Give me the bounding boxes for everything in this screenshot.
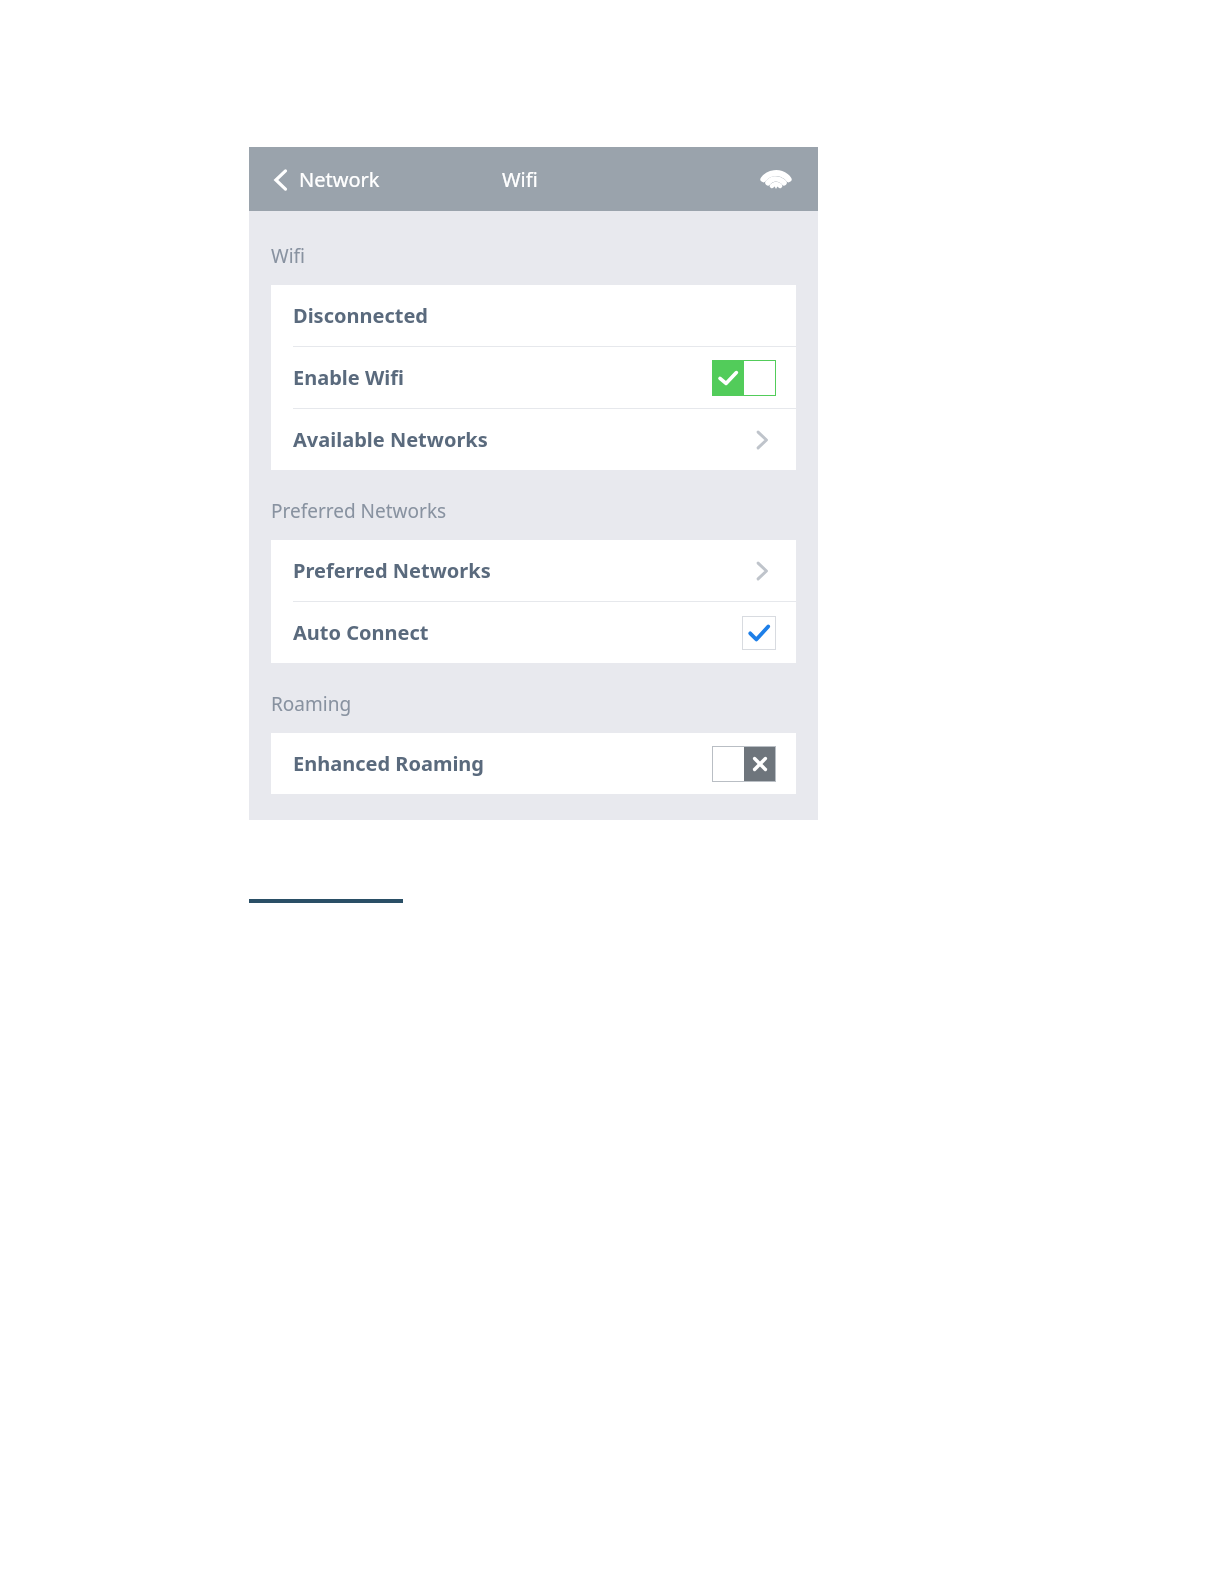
staticText: Roaming [271,691,352,717]
button[interactable]: Available Networks [271,409,796,470]
other: Enable Wifi on [712,360,776,396]
button[interactable]: Wifi status [756,159,796,199]
other: Open [748,557,776,585]
staticText: Wifi [502,166,538,193]
button[interactable]: Network [267,160,386,199]
staticText: Auto Connect [293,619,429,646]
staticText: Preferred Networks [293,557,491,584]
staticText: Preferred Networks [271,498,447,524]
staticText: Network [299,166,380,193]
staticText: Available Networks [293,426,488,453]
staticText: Enhanced Roaming [293,750,484,777]
button[interactable]: Auto Connect [271,602,796,663]
staticText: Wifi [271,243,306,269]
other: Enhanced Roaming off [712,746,776,782]
staticText: Enable Wifi [293,364,404,391]
button[interactable]: Enable Wifi [271,347,796,408]
staticText: Disconnected [293,302,428,329]
button[interactable]: Enhanced Roaming [271,733,796,794]
other: Open [748,426,776,454]
button[interactable]: Disconnected [271,285,796,346]
other: Auto Connect enabled [742,616,776,650]
button[interactable]: Preferred Networks [271,540,796,601]
